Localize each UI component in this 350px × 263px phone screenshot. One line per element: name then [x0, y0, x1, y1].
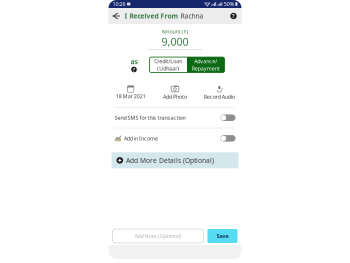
button[interactable]: 18 Mar 2021: [108, 86, 153, 100]
button[interactable]: Add Photo: [153, 85, 197, 100]
button[interactable]: Help: [225, 8, 241, 24]
staticText: I Received From: [124, 12, 178, 20]
staticText: Repayment: [192, 65, 220, 72]
staticText: Credit/Loan: [154, 58, 182, 65]
staticText: Add Photo: [163, 93, 187, 100]
staticText: Rachna: [178, 12, 203, 20]
button[interactable]: Add in Income: [108, 128, 241, 148]
staticText: 9,000: [161, 35, 188, 49]
button[interactable]: »: [197, 85, 241, 100]
staticText: Add in Income: [124, 135, 158, 142]
staticText: Add More Details (Optional): [126, 156, 214, 165]
button[interactable]: Add Note (Optional): [112, 229, 203, 243]
button[interactable]: Credit/Loan: [149, 57, 187, 72]
staticText: Amount (₹): [161, 28, 188, 35]
staticText: 50%: [224, 0, 234, 8]
button[interactable]: Save: [207, 229, 237, 243]
staticText: as: [130, 57, 137, 66]
button[interactable]: Back: [108, 8, 124, 24]
staticText: 18 Mar 2021: [116, 93, 146, 100]
staticText: 10:26: [112, 0, 125, 8]
staticText: »: [221, 85, 223, 91]
staticText: (Udhaar): [157, 65, 179, 72]
button[interactable]: Send SMS for this transaction: [108, 108, 241, 128]
staticText: Record Audio: [204, 93, 235, 100]
staticText: Add Note (Optional): [134, 232, 181, 240]
staticText: Advance/: [194, 58, 217, 65]
staticText: Save: [216, 232, 228, 240]
button[interactable]: Advance/: [187, 57, 224, 72]
staticText: ?: [132, 66, 135, 73]
button[interactable]: Add More Details (Optional): [111, 152, 238, 168]
staticText: Send SMS for this transaction: [114, 114, 185, 121]
staticText: ?: [232, 12, 235, 20]
